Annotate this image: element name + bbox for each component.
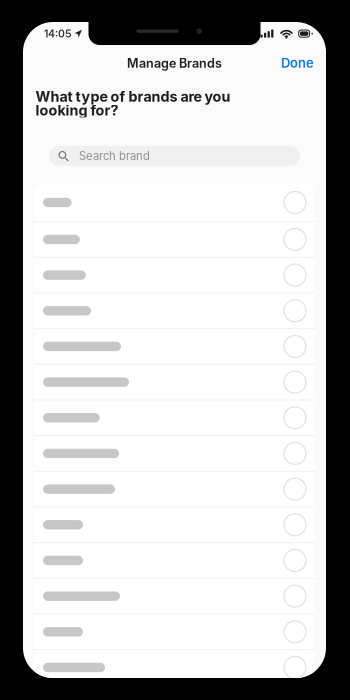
staticText: 14:05 [44,27,72,40]
button[interactable]: Search brand [23,146,326,166]
staticText: Search brand [79,149,150,163]
button[interactable]: Brand option [34,543,315,579]
button[interactable]: Brand option [34,614,315,650]
button[interactable]: Brand option [34,222,315,258]
button[interactable]: Brand option [34,258,315,293]
button[interactable]: Brand option [34,650,315,686]
button[interactable]: Brand option [34,184,315,222]
button[interactable]: Brand option [34,365,315,400]
staticText: Done [281,55,314,71]
staticText: What type of brands are you [35,88,230,105]
button[interactable]: Brand option [34,472,315,507]
button[interactable]: Brand option [34,293,315,329]
button[interactable]: Brand option [34,579,315,614]
button[interactable]: Brand option [34,436,315,472]
staticText: looking for? [35,102,118,119]
staticText: Manage Brands [127,55,222,71]
button[interactable]: Brand option [34,329,315,365]
button[interactable]: Brand option [34,507,315,543]
button[interactable]: Brand option [34,400,315,436]
button[interactable]: Done [265,47,326,79]
